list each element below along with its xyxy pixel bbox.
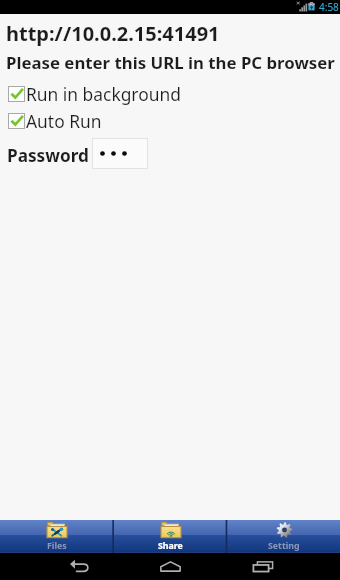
button[interactable]: Setting: [227, 520, 340, 553]
button[interactable]: Files: [0, 520, 114, 553]
staticText: Auto Run: [26, 109, 102, 133]
staticText: http://10.0.2.15:41491: [6, 20, 220, 47]
button[interactable]: Home: [150, 553, 190, 580]
button[interactable]: Share: [114, 520, 227, 553]
button[interactable]: Back: [58, 553, 100, 580]
staticText: Run in background: [26, 82, 181, 106]
button[interactable]: [92, 138, 148, 169]
staticText: Files: [47, 540, 67, 552]
staticText: Password: [7, 144, 89, 167]
staticText: Setting: [268, 540, 300, 552]
staticText: 4:58: [319, 0, 339, 14]
button[interactable]: Recent apps: [243, 553, 283, 580]
staticText: Please enter this URL in the PC browser: [6, 51, 335, 74]
button[interactable]: Auto Run: [0, 107, 340, 134]
button[interactable]: Run in background: [0, 80, 340, 107]
staticText: Share: [158, 540, 183, 552]
